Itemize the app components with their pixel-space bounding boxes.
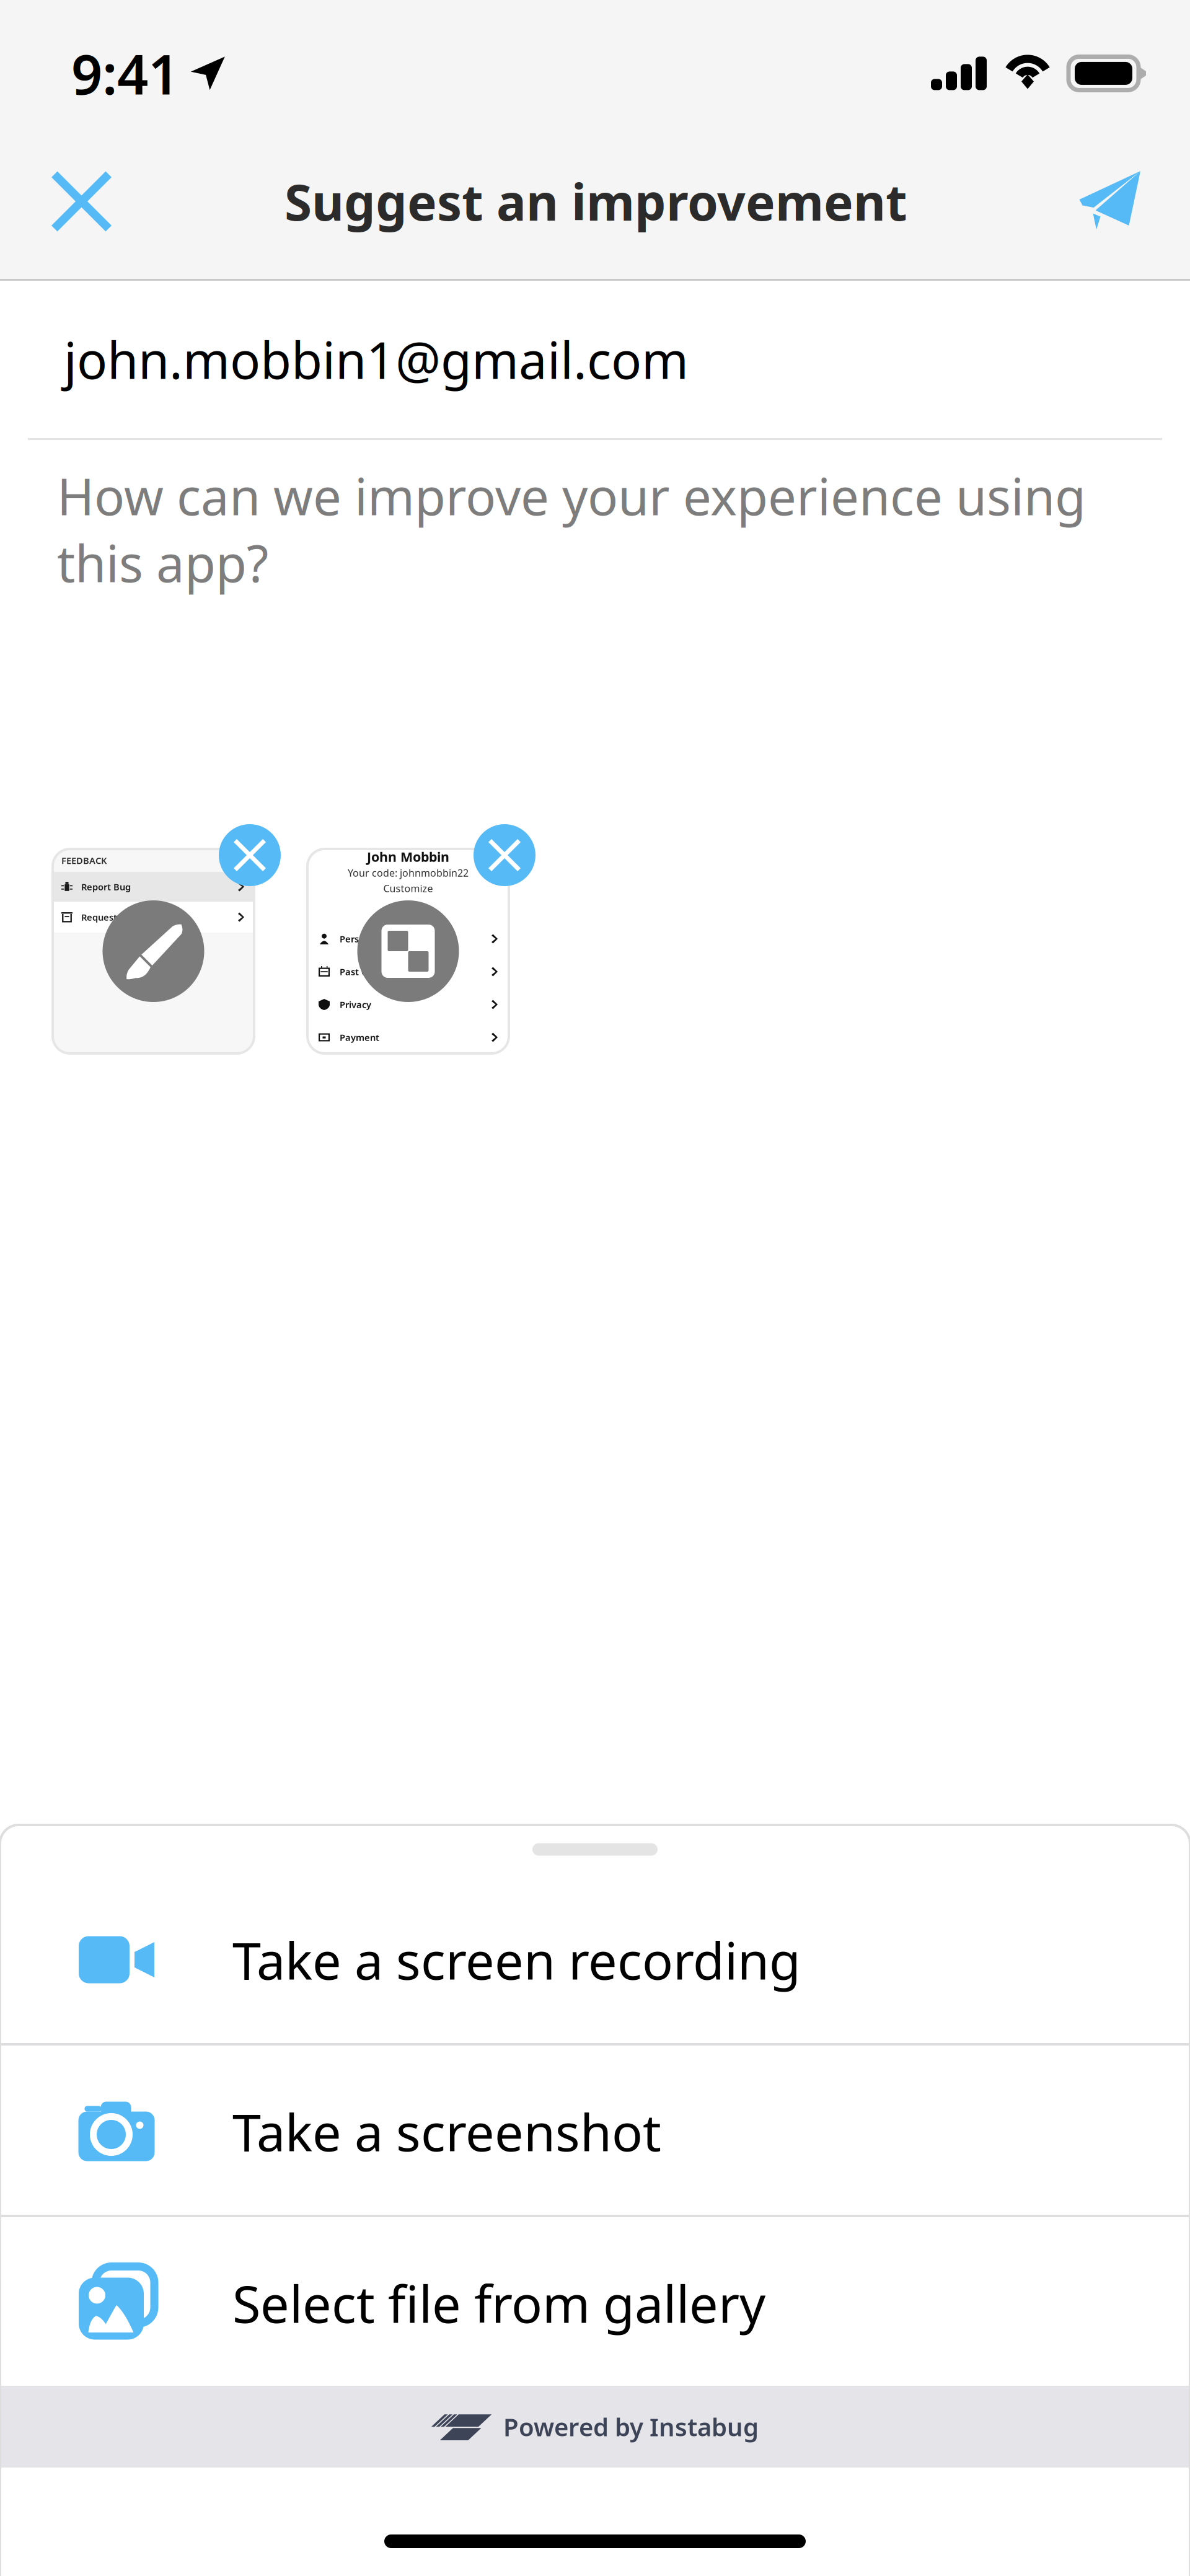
staticText: Past Orders <box>340 966 392 978</box>
staticText: 9:41 <box>71 37 179 110</box>
staticText: john.mobbin1@gmail.com <box>64 326 689 393</box>
staticText: Customize <box>383 882 433 895</box>
button[interactable]: Remove attachment 1 <box>53 824 281 1053</box>
staticText: Report Bug <box>81 881 131 893</box>
button[interactable]: Remove attachment 2 <box>307 824 535 1053</box>
staticText: Privacy <box>340 998 371 1011</box>
button[interactable]: Select file from gallery <box>0 2217 1190 2389</box>
button[interactable]: Send <box>1029 124 1190 279</box>
staticText: Take a screen recording <box>232 1926 801 1994</box>
staticText: John Mobbin <box>367 848 449 865</box>
button[interactable]: Take a screenshot <box>0 2046 1190 2217</box>
staticText: Personal <box>340 933 378 945</box>
staticText: FEEDBACK <box>61 854 107 866</box>
staticText: Suggest an improvement <box>284 168 907 234</box>
staticText: Take a screenshot <box>232 2097 661 2165</box>
staticText: Select file from gallery <box>232 2269 765 2337</box>
button[interactable]: Take a screen recording <box>0 1874 1190 2046</box>
staticText: Powered by Instabug <box>503 2410 759 2443</box>
staticText: Your code: johnmobbin22 <box>348 866 469 879</box>
button[interactable]: Close <box>0 124 163 279</box>
staticText: How can we improve your experience using… <box>57 462 1086 596</box>
staticText: Request Restaurant <box>81 911 169 923</box>
button[interactable]: How can we improve your experience using… <box>0 440 1190 799</box>
button[interactable]: john.mobbin1@gmail.com <box>0 281 1190 438</box>
staticText: Payment <box>340 1031 379 1043</box>
